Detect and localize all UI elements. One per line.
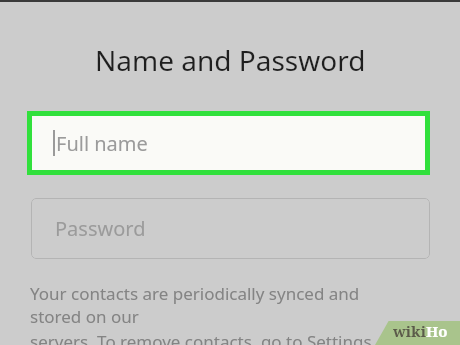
button[interactable]: Full name [32, 116, 425, 170]
staticText: Full name [56, 130, 148, 157]
staticText: Name and Password [95, 41, 366, 79]
staticText: wikiHow [393, 321, 460, 345]
staticText: servers. To remove contacts, go to Setti… [30, 330, 400, 345]
staticText: Password [55, 215, 146, 242]
button[interactable]: Password [31, 198, 430, 259]
staticText: Your contacts are periodically synced an… [30, 282, 400, 328]
